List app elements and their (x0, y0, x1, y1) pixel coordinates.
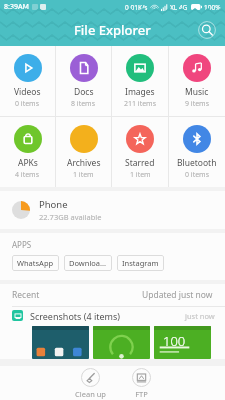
staticText: APKs (18, 157, 38, 169)
button[interactable]: Archives (56, 117, 111, 187)
button[interactable]: Screenshot 3 (154, 326, 211, 359)
button[interactable]: Music (169, 46, 225, 116)
staticText: 8 items (71, 99, 96, 109)
staticText: 22.73GB available (39, 212, 102, 222)
staticText: Updated just now (142, 289, 213, 301)
button[interactable]: Screenshot 2 (93, 326, 150, 359)
staticText: just now (185, 311, 215, 321)
staticText: Clean up (75, 389, 106, 399)
staticText: File Explorer (74, 21, 151, 39)
staticText: XL 4G (170, 3, 188, 12)
staticText: Videos (14, 86, 41, 98)
button[interactable]: Instagram (117, 255, 164, 271)
staticText: 100% (204, 3, 221, 12)
button[interactable]: Screenshot 1 (32, 326, 89, 359)
staticText: 0.01K/s (125, 3, 148, 12)
button[interactable]: Downloa... (64, 255, 112, 271)
button[interactable]: FTP (128, 368, 155, 399)
staticText: 1 item (73, 170, 94, 180)
staticText: 0 items (185, 170, 210, 180)
staticText: Recent (12, 289, 40, 301)
staticText: Starred (125, 157, 155, 169)
staticText: Images (125, 86, 155, 98)
staticText: Bluetooth (177, 157, 217, 169)
staticText: Downloa... (69, 258, 107, 268)
staticText: Screenshots (4 items) (30, 310, 120, 322)
staticText: FTP (135, 389, 148, 399)
staticText: APPS (12, 239, 32, 250)
staticText: 9 items (185, 99, 210, 109)
button[interactable]: Clean up (71, 368, 110, 399)
staticText: 211 items (124, 99, 157, 109)
staticText: 0 items (15, 99, 40, 109)
staticText: Docs (74, 86, 94, 98)
staticText: Music (185, 86, 209, 98)
staticText: Archives (67, 157, 101, 169)
staticText: 4 items (15, 170, 40, 180)
button[interactable]: Starred (112, 117, 168, 187)
button[interactable]: Videos (0, 46, 55, 116)
staticText: 100 (163, 332, 186, 350)
button[interactable]: APKs (0, 117, 55, 187)
button[interactable]: Search (197, 20, 217, 40)
button[interactable]: WhatsApp (12, 255, 59, 271)
staticText: Phone (39, 198, 68, 211)
staticText: Instagram (122, 258, 159, 268)
button[interactable]: Screenshots (4 items) (0, 307, 225, 324)
staticText: 8:39AM (4, 2, 29, 12)
button[interactable]: Images (112, 46, 168, 116)
staticText: 1 item (130, 170, 151, 180)
button[interactable]: Bluetooth (169, 117, 225, 187)
button[interactable]: Phone (0, 191, 225, 229)
staticText: WhatsApp (17, 258, 54, 268)
button[interactable]: Docs (56, 46, 111, 116)
